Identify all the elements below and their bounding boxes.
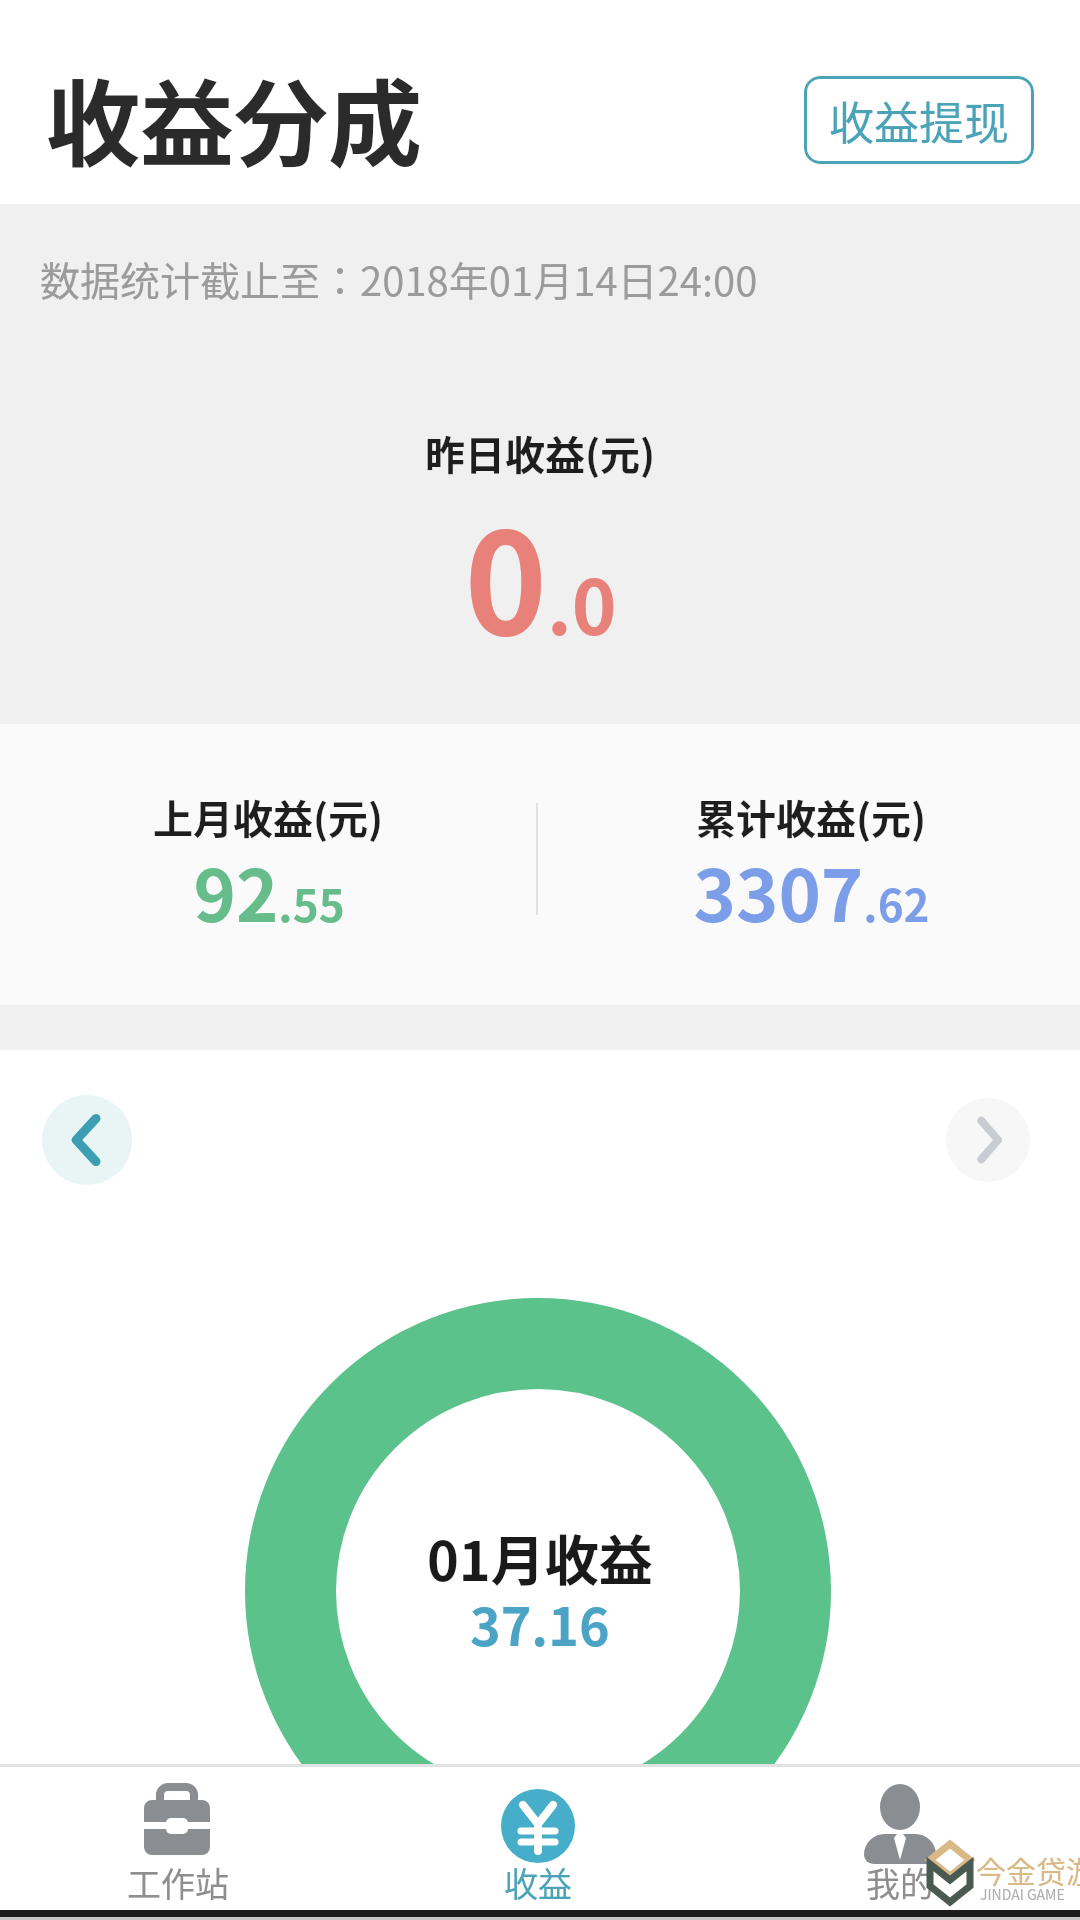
button[interactable]: 工作站 [88, 1764, 268, 1920]
button[interactable]: 收益 [448, 1764, 628, 1920]
button[interactable] [42, 1095, 132, 1185]
staticText: 今金贷游戏 [976, 1848, 1080, 1891]
staticText: 92.55 [193, 838, 345, 942]
staticText: 数据统计截止至：2018年01月14日24:00 [40, 250, 758, 308]
staticText: 0.0 [464, 473, 617, 676]
staticText: 我的 [866, 1858, 934, 1907]
staticText: 昨日收益(元) [425, 424, 656, 482]
staticText: 累计收益(元) [696, 788, 927, 846]
staticText: 收益提现 [829, 88, 1010, 153]
button[interactable]: 我的 [810, 1764, 990, 1920]
staticText: 3307.62 [693, 838, 930, 942]
staticText: 上月收益(元) [153, 788, 384, 846]
staticText: 工作站 [127, 1858, 229, 1907]
button[interactable]: 收益提现 [804, 76, 1034, 164]
button[interactable] [946, 1098, 1030, 1182]
staticText: 01月收益 [427, 1518, 653, 1596]
staticText: JINDAI GAME [980, 1884, 1065, 1904]
staticText: 37.16 [470, 1586, 610, 1661]
staticText: 收益 [504, 1858, 572, 1907]
staticText: 收益分成 [46, 50, 423, 186]
